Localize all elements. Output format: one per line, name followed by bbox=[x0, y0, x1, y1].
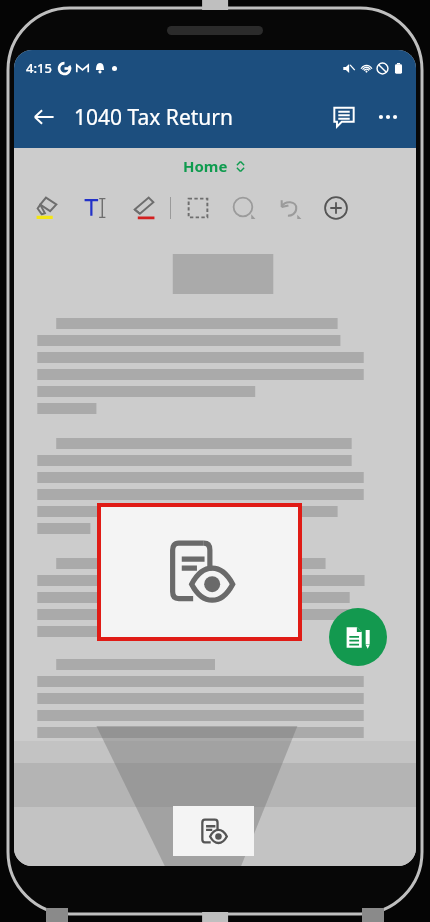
button[interactable]: Home bbox=[175, 153, 255, 179]
button[interactable]: Shapes bbox=[227, 191, 261, 225]
button[interactable]: More options bbox=[366, 95, 410, 139]
button[interactable]: Comments bbox=[322, 95, 366, 139]
staticText: Home bbox=[183, 156, 228, 176]
button[interactable]: Add bbox=[319, 191, 353, 225]
button[interactable]: Document preview bbox=[99, 505, 300, 639]
button[interactable]: Pen bbox=[126, 191, 160, 225]
button[interactable]: Document thumbnail bbox=[173, 806, 254, 856]
button[interactable]: Edit document bbox=[329, 608, 387, 666]
staticText: 4:15 bbox=[26, 59, 52, 77]
button[interactable]: Undo bbox=[273, 191, 307, 225]
staticText: 1040 Tax Return bbox=[74, 103, 322, 132]
button[interactable]: Select bbox=[181, 191, 215, 225]
button[interactable]: Highlighter bbox=[30, 191, 64, 225]
button[interactable]: Text tool bbox=[78, 191, 112, 225]
button[interactable]: Back bbox=[22, 95, 66, 139]
